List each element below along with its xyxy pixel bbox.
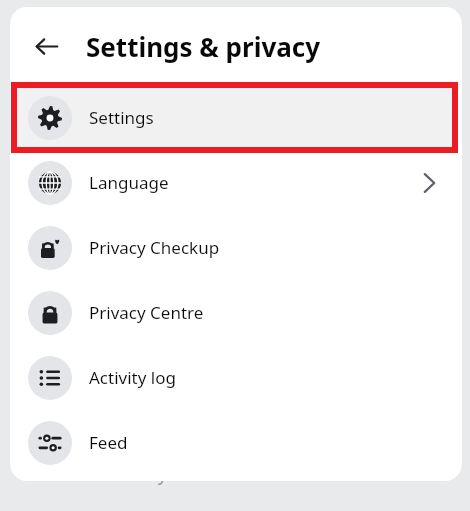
staticText: Feed [89,431,128,454]
button[interactable]: Back [26,26,66,66]
button[interactable]: Privacy Centre [14,280,458,345]
button[interactable]: Feed [14,410,458,475]
button[interactable]: Activity log [14,345,458,410]
button[interactable]: Language [14,150,458,215]
staticText: Activity log [89,366,176,389]
staticText: Language [89,171,169,194]
staticText: Privacy Centre [89,301,204,324]
staticText: Privacy Checkup [89,236,220,259]
staticText: Privacy [104,460,168,486]
staticText: Settings & privacy [86,29,321,64]
staticText: Settings [89,106,154,129]
button[interactable]: Privacy Checkup [14,215,458,280]
button[interactable]: Settings [14,85,458,150]
